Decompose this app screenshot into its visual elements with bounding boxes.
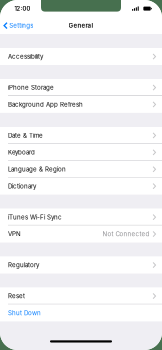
button[interactable]: Dictionary <box>0 178 162 195</box>
staticText: Settings <box>9 22 33 29</box>
staticText: Not Connected <box>103 230 150 238</box>
button[interactable]: iPhone Storage <box>0 79 162 96</box>
button[interactable]: Accessibility <box>0 48 162 65</box>
button[interactable]: VPN <box>0 226 162 242</box>
staticText: Language & Region <box>8 165 66 173</box>
staticText: Regulatory <box>8 261 39 269</box>
staticText: Accessibility <box>8 53 43 60</box>
button[interactable]: Keyboard <box>0 144 162 161</box>
staticText: 12:00 <box>14 5 30 12</box>
button[interactable]: Language & Region <box>0 161 162 178</box>
button[interactable]: iTunes Wi-Fi Sync <box>0 209 162 226</box>
button[interactable]: Settings <box>0 17 33 34</box>
staticText: Reset <box>8 292 25 300</box>
staticText: Date & Time <box>8 132 43 139</box>
staticText: VPN <box>8 230 21 238</box>
staticText: Keyboard <box>8 149 35 156</box>
button[interactable]: Reset <box>0 288 162 304</box>
button[interactable]: Date & Time <box>0 127 162 144</box>
button[interactable]: Regulatory <box>0 257 162 273</box>
button[interactable]: Shut Down <box>0 304 162 321</box>
button[interactable]: Background App Refresh <box>0 96 162 113</box>
staticText: Shut Down <box>8 309 41 317</box>
staticText: iTunes Wi-Fi Sync <box>8 213 62 221</box>
staticText: iPhone Storage <box>8 84 54 91</box>
staticText: Dictionary <box>8 182 36 190</box>
staticText: General <box>68 22 93 29</box>
staticText: Background App Refresh <box>8 101 83 108</box>
